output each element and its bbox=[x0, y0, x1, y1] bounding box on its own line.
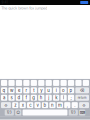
button[interactable] bbox=[31, 80, 37, 86]
button[interactable]: ⌫ bbox=[75, 87, 89, 93]
button[interactable]: . bbox=[72, 102, 78, 108]
button[interactable]: r bbox=[23, 87, 29, 93]
button[interactable]: e bbox=[16, 87, 22, 93]
button[interactable]: d bbox=[16, 95, 22, 101]
staticText: w bbox=[10, 88, 13, 93]
staticText: y bbox=[40, 88, 42, 93]
staticText: s bbox=[10, 95, 12, 100]
button[interactable]: c bbox=[27, 102, 33, 108]
button[interactable] bbox=[38, 80, 44, 86]
button[interactable]: ⇧ bbox=[1, 102, 11, 108]
staticText: t bbox=[33, 88, 34, 93]
button[interactable]: ⇧ bbox=[79, 102, 89, 108]
staticText: l bbox=[63, 95, 64, 100]
button[interactable]: q bbox=[1, 87, 7, 93]
button[interactable] bbox=[16, 80, 22, 86]
staticText: p bbox=[69, 88, 72, 93]
staticText: ⌫ bbox=[80, 88, 85, 93]
staticText: h bbox=[40, 95, 43, 100]
staticText: r bbox=[25, 88, 27, 93]
button[interactable]: x bbox=[20, 102, 26, 108]
button[interactable]: 123 bbox=[69, 110, 78, 116]
staticText: j bbox=[48, 95, 49, 100]
staticText bbox=[81, 0, 87, 17]
staticText: x bbox=[22, 103, 24, 108]
button[interactable]: h bbox=[38, 95, 44, 101]
staticText: , bbox=[67, 103, 68, 108]
staticText: n bbox=[51, 103, 54, 108]
button[interactable]: k bbox=[53, 95, 59, 101]
button[interactable]: u bbox=[46, 87, 52, 93]
button[interactable]: y bbox=[38, 87, 44, 93]
button[interactable]: l bbox=[60, 95, 67, 101]
button[interactable]: s bbox=[8, 95, 15, 101]
staticText: o bbox=[62, 88, 65, 93]
staticText: z bbox=[14, 103, 16, 108]
staticText: k bbox=[55, 95, 57, 100]
staticText: ; bbox=[70, 95, 71, 100]
staticText: 123 bbox=[7, 111, 12, 114]
staticText: ⌨ bbox=[80, 110, 85, 115]
staticText: 123 bbox=[71, 111, 76, 114]
button[interactable] bbox=[1, 80, 7, 86]
button[interactable] bbox=[23, 80, 29, 86]
button[interactable] bbox=[68, 80, 74, 86]
button[interactable]: i bbox=[53, 87, 59, 93]
button[interactable]: n bbox=[49, 102, 55, 108]
staticText: ☺ bbox=[16, 110, 20, 115]
button[interactable]: ; bbox=[68, 95, 74, 101]
button[interactable]: g bbox=[31, 95, 37, 101]
button[interactable]: w bbox=[8, 87, 15, 93]
button[interactable]: 123 bbox=[5, 110, 14, 116]
button[interactable]: v bbox=[34, 102, 41, 108]
staticText: ⇧ bbox=[4, 103, 8, 107]
button[interactable] bbox=[46, 80, 52, 86]
button[interactable]: b bbox=[42, 102, 48, 108]
staticText: i bbox=[56, 88, 57, 93]
button[interactable]: o bbox=[60, 87, 67, 93]
staticText: m bbox=[58, 103, 62, 108]
button[interactable]: f bbox=[23, 95, 29, 101]
button[interactable] bbox=[53, 80, 59, 86]
button[interactable]: return bbox=[75, 95, 89, 101]
staticText: e bbox=[18, 88, 20, 93]
staticText: c bbox=[29, 103, 31, 108]
staticText: b bbox=[43, 103, 46, 108]
staticText: f bbox=[25, 95, 27, 100]
button[interactable] bbox=[83, 80, 89, 86]
staticText: a bbox=[3, 95, 5, 100]
button[interactable] bbox=[75, 80, 82, 86]
staticText: return bbox=[78, 96, 87, 99]
staticText: ⇧ bbox=[82, 103, 86, 107]
staticText: q bbox=[3, 88, 6, 93]
staticText: 9:41 bbox=[2, 1, 8, 4]
button[interactable]: t bbox=[31, 87, 37, 93]
button[interactable]: a bbox=[1, 95, 7, 101]
staticText: v bbox=[37, 103, 39, 108]
button[interactable]: z bbox=[12, 102, 18, 108]
staticText: The quick brown fox jumped bbox=[1, 6, 47, 10]
button[interactable]: ⌨ bbox=[79, 110, 85, 116]
button[interactable] bbox=[8, 80, 15, 86]
button[interactable]: m bbox=[57, 102, 63, 108]
staticText: . bbox=[74, 103, 75, 108]
button[interactable]: ☺ bbox=[15, 110, 21, 116]
button[interactable]: p bbox=[68, 87, 74, 93]
button[interactable]: , bbox=[64, 102, 70, 108]
button[interactable] bbox=[23, 110, 67, 116]
button[interactable] bbox=[60, 80, 67, 86]
staticText: d bbox=[17, 95, 20, 100]
staticText: g bbox=[32, 95, 35, 100]
button[interactable]: j bbox=[46, 95, 52, 101]
staticText: u bbox=[47, 88, 50, 93]
